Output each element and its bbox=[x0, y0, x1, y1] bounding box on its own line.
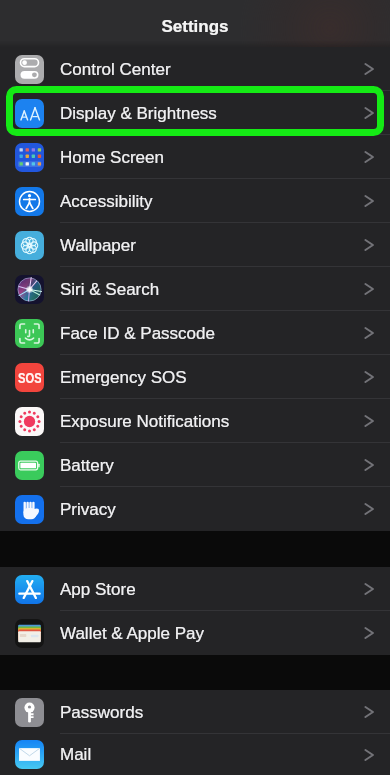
button[interactable]: Exposure Notifications bbox=[0, 399, 390, 443]
button[interactable]: Privacy bbox=[0, 487, 390, 531]
button[interactable]: App Store bbox=[0, 567, 390, 611]
staticText: Exposure Notifications bbox=[60, 412, 230, 431]
button[interactable]: Accessibility bbox=[0, 179, 390, 223]
staticText: Battery bbox=[60, 456, 114, 475]
button[interactable]: Wallpaper bbox=[0, 223, 390, 267]
button[interactable]: Home Screen bbox=[0, 135, 390, 179]
staticText: Siri & Search bbox=[60, 280, 160, 299]
staticText: Wallet & Apple Pay bbox=[60, 624, 204, 643]
staticText: Home Screen bbox=[60, 148, 164, 167]
staticText: Wallpaper bbox=[60, 236, 136, 255]
staticText: Emergency SOS bbox=[60, 368, 187, 387]
button[interactable]: Siri & Search bbox=[0, 267, 390, 311]
button[interactable]: SOS bbox=[0, 355, 390, 399]
staticText: Control Center bbox=[60, 60, 171, 79]
staticText: Accessibility bbox=[60, 192, 153, 211]
staticText: Privacy bbox=[60, 500, 116, 519]
button[interactable]: Control Center bbox=[0, 47, 390, 91]
staticText: Mail bbox=[60, 745, 92, 764]
staticText: Display & Brightness bbox=[60, 104, 217, 123]
staticText: App Store bbox=[60, 580, 136, 599]
button[interactable]: Display & Brightness bbox=[0, 91, 390, 135]
button[interactable]: Passwords bbox=[0, 690, 390, 734]
button[interactable]: Face ID & Passcode bbox=[0, 311, 390, 355]
staticText: Passwords bbox=[60, 703, 144, 722]
button[interactable]: Wallet & Apple Pay bbox=[0, 611, 390, 655]
button[interactable]: Mail bbox=[0, 734, 390, 775]
staticText: Settings bbox=[161, 17, 229, 36]
button[interactable]: Battery bbox=[0, 443, 390, 487]
staticText: SOS bbox=[18, 370, 41, 386]
staticText: Face ID & Passcode bbox=[60, 324, 215, 343]
